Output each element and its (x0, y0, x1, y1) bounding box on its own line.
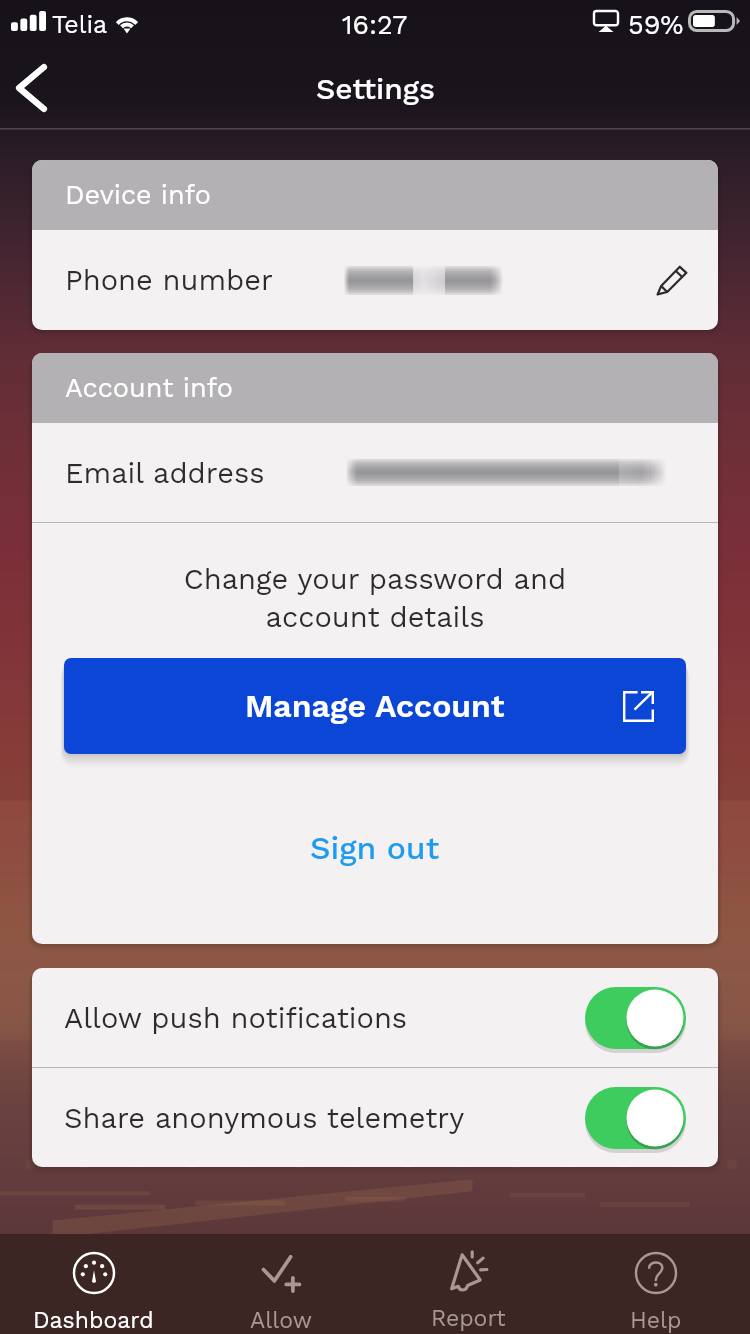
staticText: Settings (316, 71, 435, 106)
button[interactable]: Dashboard (0, 1234, 187, 1334)
staticText: Allow push notifications (64, 1001, 408, 1035)
button[interactable]: Allow (187, 1234, 374, 1334)
button[interactable]: Report (374, 1234, 562, 1334)
button[interactable]: Help (562, 1234, 750, 1334)
staticText: Account info (65, 372, 233, 404)
staticText: 16:27 (342, 9, 408, 41)
button[interactable]: Allow push notifications (32, 968, 718, 1067)
button[interactable]: Manage Account (64, 658, 686, 754)
staticText: Report (431, 1305, 506, 1332)
staticText: Phone number (65, 263, 273, 297)
staticText: Device info (65, 179, 211, 211)
button[interactable]: Share anonymous telemetry (32, 1068, 718, 1167)
staticText: Help (630, 1307, 682, 1334)
button[interactable]: Sign out (288, 823, 462, 873)
staticText: 59% (628, 9, 684, 41)
staticText: Allow (250, 1307, 312, 1334)
staticText: Sign out (310, 829, 440, 867)
button[interactable]: Phone number (32, 230, 718, 330)
staticText: Manage Account (245, 687, 505, 725)
staticText: Email address (65, 456, 265, 490)
staticText: Share anonymous telemetry (64, 1101, 465, 1135)
staticText: Dashboard (33, 1307, 154, 1334)
staticText: Telia (52, 10, 108, 39)
staticText: Change your password and account details (32, 562, 718, 634)
button[interactable]: Back (0, 44, 62, 132)
other: Edit phone number (653, 261, 691, 299)
